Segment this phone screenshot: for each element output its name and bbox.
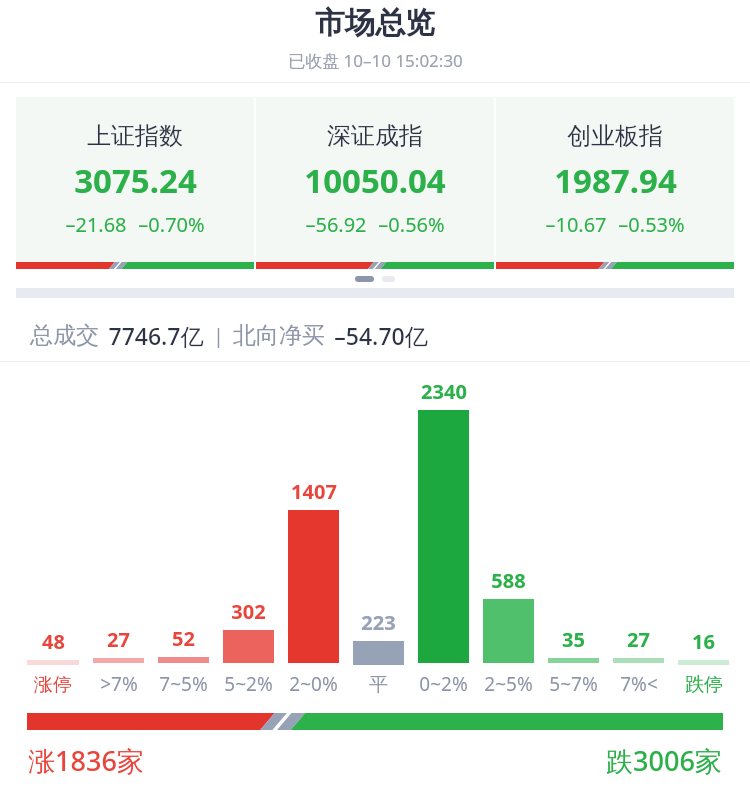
- button[interactable]: 223: [346, 380, 411, 697]
- staticText: 35: [562, 626, 585, 653]
- button[interactable]: 16: [671, 380, 736, 697]
- staticText: 5~2%: [224, 671, 273, 697]
- staticText: –0.53%: [618, 211, 685, 238]
- button[interactable]: 创业板指: [496, 97, 734, 269]
- staticText: –0.56%: [378, 211, 445, 238]
- staticText: 7~5%: [159, 671, 208, 697]
- button[interactable]: 302: [216, 378, 281, 697]
- staticText: 1407: [291, 478, 337, 505]
- button[interactable]: 上证指数: [16, 97, 254, 269]
- staticText: 跌3006家: [606, 742, 722, 779]
- staticText: 10050.04: [304, 158, 446, 203]
- button[interactable]: 588: [476, 378, 541, 697]
- staticText: 上证指数: [87, 121, 183, 151]
- button[interactable]: 涨1836家: [28, 742, 722, 779]
- staticText: 平: [369, 673, 388, 697]
- staticText: >7%: [100, 671, 138, 697]
- staticText: 2~0%: [289, 671, 338, 697]
- staticText: –56.92: [305, 211, 367, 238]
- staticText: 5~7%: [549, 671, 598, 697]
- button[interactable]: 总成交: [30, 320, 750, 351]
- staticText: –21.68: [65, 211, 127, 238]
- staticText: 2~5%: [484, 671, 533, 697]
- staticText: 302: [231, 598, 266, 625]
- staticText: 跌停: [685, 673, 723, 697]
- staticText: 588: [491, 567, 526, 594]
- staticText: 2340: [421, 378, 467, 405]
- staticText: |: [213, 323, 224, 349]
- staticText: 已收盘 10–10 15:02:30: [288, 49, 463, 72]
- staticText: 0~2%: [419, 671, 468, 697]
- staticText: 48: [42, 628, 65, 655]
- button[interactable]: 27: [606, 378, 671, 697]
- staticText: 223: [361, 609, 396, 636]
- staticText: 7%<: [620, 671, 658, 697]
- staticText: 3075.24: [74, 158, 197, 203]
- button[interactable]: 35: [541, 378, 606, 697]
- staticText: –54.70亿: [334, 320, 428, 351]
- button[interactable]: 深证成指: [256, 97, 494, 269]
- staticText: 总成交: [30, 321, 99, 350]
- staticText: 16: [692, 628, 715, 655]
- staticText: 市场总览: [315, 4, 435, 42]
- staticText: 52: [172, 625, 195, 652]
- button[interactable]: 48: [20, 380, 86, 697]
- staticText: 7746.7亿: [108, 320, 204, 351]
- staticText: 涨1836家: [28, 742, 144, 779]
- staticText: 创业板指: [567, 121, 663, 151]
- staticText: 北向净买: [233, 321, 325, 350]
- staticText: 27: [107, 626, 130, 653]
- other: Page indicator: [0, 276, 750, 282]
- button[interactable]: 2340: [411, 378, 476, 697]
- staticText: 1987.94: [554, 158, 677, 203]
- other: Advance decline ratio bar: [27, 713, 723, 730]
- staticText: 深证成指: [327, 121, 423, 151]
- staticText: –0.70%: [138, 211, 205, 238]
- staticText: –10.67: [545, 211, 607, 238]
- button[interactable]: 1407: [281, 378, 346, 697]
- button[interactable]: 27: [86, 378, 151, 697]
- staticText: 涨停: [34, 673, 72, 697]
- staticText: 27: [627, 626, 650, 653]
- button[interactable]: 52: [151, 378, 216, 697]
